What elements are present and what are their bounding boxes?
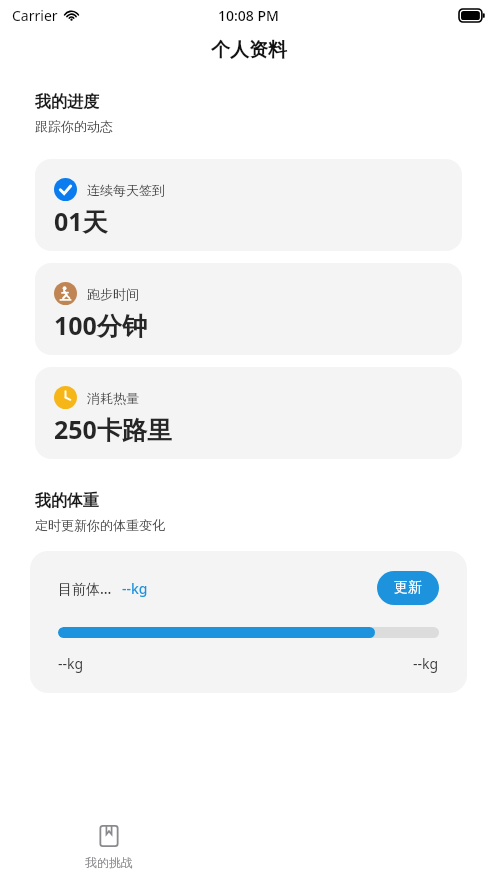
button[interactable]: 连续每天签到	[35, 159, 462, 251]
staticText: --kg	[122, 579, 148, 598]
staticText: --kg	[413, 654, 439, 673]
staticText: 消耗热量	[87, 390, 139, 406]
staticText: 跑步时间	[87, 286, 139, 302]
staticText: 我的挑战	[85, 855, 133, 870]
staticText: --kg	[58, 654, 84, 673]
button[interactable]: 我的挑战	[85, 824, 133, 870]
button[interactable]: 跑步时间	[35, 263, 462, 355]
staticText: 我的进度	[35, 92, 99, 112]
staticText: 01天	[54, 204, 108, 238]
staticText: 250卡路里	[54, 412, 172, 446]
staticText: 更新	[394, 579, 422, 597]
staticText: 我的体重	[35, 491, 99, 511]
staticText: 100分钟	[54, 308, 147, 342]
staticText: 10:08 PM	[218, 6, 279, 25]
staticText: 连续每天签到	[87, 182, 165, 198]
staticText: 定时更新你的体重变化	[35, 517, 165, 533]
staticText: 目前体…	[58, 579, 112, 598]
staticText: 个人资料	[211, 38, 287, 62]
button[interactable]: 消耗热量	[35, 367, 462, 459]
staticText: Carrier	[12, 6, 58, 25]
button[interactable]: 更新	[377, 571, 439, 605]
staticText: 跟踪你的动态	[35, 118, 113, 134]
